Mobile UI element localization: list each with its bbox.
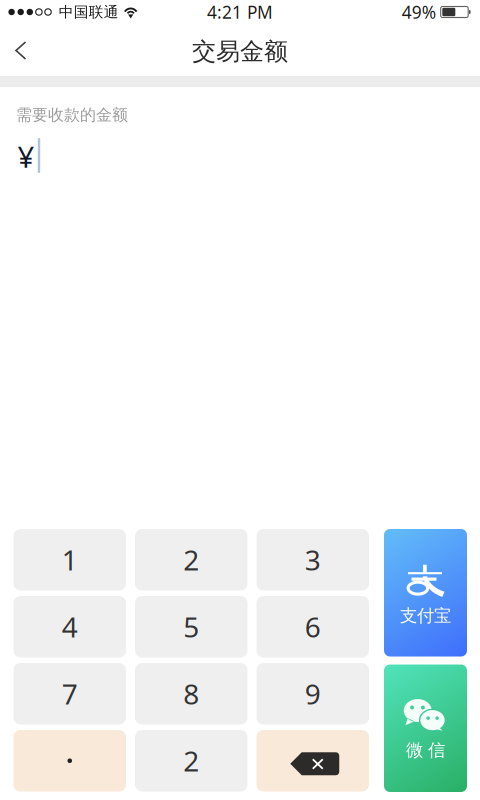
button[interactable]: 7 — [13, 663, 126, 724]
staticText: 中国联通 — [59, 3, 119, 21]
staticText: 2 — [183, 541, 199, 578]
staticText: 1 — [62, 541, 78, 578]
staticText: 6 — [305, 608, 321, 645]
button[interactable]: 3 — [256, 529, 369, 590]
staticText: 49% — [402, 0, 436, 23]
staticText: 7 — [62, 675, 78, 712]
button[interactable]: 6 — [256, 596, 369, 657]
button[interactable]: Decimal point — [13, 730, 126, 791]
button[interactable]: Delete — [256, 730, 369, 791]
staticText: 需要收款的金额 — [16, 105, 128, 125]
button[interactable]: 微 信 — [384, 664, 467, 792]
staticText: ¥ — [17, 137, 34, 176]
staticText: 4 — [62, 608, 78, 645]
staticText: 4:21 PM — [207, 0, 273, 23]
button[interactable]: 1 — [13, 529, 126, 590]
button[interactable]: 4 — [13, 596, 126, 657]
staticText: 5 — [183, 608, 199, 645]
staticText: 交易金额 — [192, 37, 288, 66]
button[interactable]: 9 — [256, 663, 369, 724]
button[interactable]: Back — [0, 29, 44, 74]
button[interactable]: 2 — [135, 529, 247, 590]
button[interactable]: 2 — [135, 730, 247, 791]
staticText: 3 — [305, 541, 321, 578]
button[interactable]: 8 — [135, 663, 247, 724]
staticText: 支付宝 — [400, 605, 451, 626]
staticText: 微 信 — [406, 740, 445, 761]
staticText: 2 — [183, 742, 199, 779]
button[interactable]: 5 — [135, 596, 247, 657]
button[interactable]: 支付宝 — [384, 529, 467, 656]
staticText: 8 — [183, 675, 199, 712]
staticText: 9 — [305, 675, 321, 712]
